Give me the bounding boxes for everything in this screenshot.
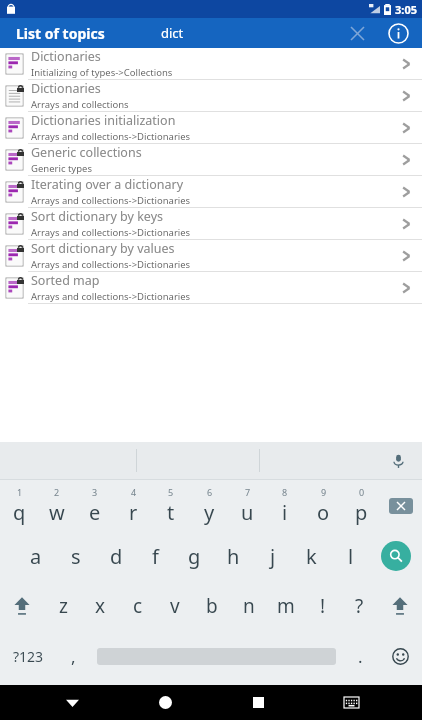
button[interactable]: Iterating over a dictionary (0, 176, 422, 208)
staticText: k (306, 543, 317, 570)
button[interactable]: Backspace (380, 480, 422, 531)
button[interactable]: Generic collections (0, 144, 422, 176)
staticText: t (167, 499, 175, 526)
staticText: 0 (359, 486, 365, 498)
staticText: , (71, 645, 76, 668)
staticText: 3:05 (395, 2, 417, 17)
button[interactable]: Shift (378, 581, 422, 631)
button[interactable]: 0 (342, 480, 380, 531)
button[interactable]: Dictionaries (0, 48, 422, 80)
button[interactable]: 4 (114, 480, 152, 531)
button[interactable]: s (56, 531, 96, 581)
button[interactable]: x (82, 581, 119, 631)
button[interactable]: Search (370, 531, 422, 581)
button[interactable]: Sort dictionary by values (0, 240, 422, 272)
button[interactable]: l (331, 531, 370, 581)
button[interactable]: a (16, 531, 56, 581)
staticText: dict (161, 24, 184, 42)
button[interactable]: 9 (304, 480, 342, 531)
staticText: 9 (321, 486, 327, 498)
staticText: 2 (54, 486, 60, 498)
button[interactable]: d (96, 531, 136, 581)
staticText: ?123 (13, 647, 44, 666)
staticText: x (95, 593, 106, 619)
staticText: . (358, 645, 363, 668)
staticText: w (49, 499, 65, 526)
button[interactable]: , (56, 631, 90, 681)
button[interactable]: ! (304, 581, 341, 631)
staticText: g (188, 543, 201, 570)
button[interactable]: 5 (152, 480, 190, 531)
button[interactable]: m (267, 581, 304, 631)
button[interactable]: Dictionaries (0, 80, 422, 112)
staticText: ? (355, 593, 364, 619)
staticText: Generic collections (31, 144, 142, 161)
button[interactable]: Home (143, 685, 187, 720)
button[interactable]: Sort dictionary by keys (0, 208, 422, 240)
staticText: n (243, 593, 255, 619)
staticText: 4 (131, 486, 137, 498)
button[interactable]: Back (50, 685, 94, 720)
button[interactable]: Info (384, 19, 412, 47)
staticText: Arrays and collections->Dictionaries (31, 226, 191, 239)
staticText: 7 (245, 486, 251, 498)
button[interactable]: g (175, 531, 214, 581)
staticText: Arrays and collections->Dictionaries (31, 194, 191, 207)
staticText: ! (320, 593, 326, 619)
staticText: e (89, 499, 101, 526)
button[interactable]: 2 (38, 480, 76, 531)
button[interactable]: z (44, 581, 82, 631)
staticText: Dictionaries (31, 48, 101, 65)
staticText: u (241, 499, 254, 526)
button[interactable]: b (193, 581, 230, 631)
staticText: v (170, 593, 180, 619)
button[interactable]: ? (341, 581, 378, 631)
button[interactable]: ?123 (0, 631, 56, 681)
staticText: z (59, 593, 68, 619)
staticText: f (152, 543, 159, 570)
button[interactable]: Clear search (344, 20, 370, 46)
button[interactable]: . (342, 631, 378, 681)
staticText: 5 (168, 486, 174, 498)
button[interactable]: Space (90, 631, 342, 681)
staticText: 8 (282, 486, 288, 498)
button[interactable]: n (230, 581, 267, 631)
button[interactable]: 3 (76, 480, 114, 531)
button[interactable]: h (214, 531, 253, 581)
button[interactable]: Recents (236, 685, 280, 720)
button[interactable]: f (136, 531, 175, 581)
button[interactable]: 7 (228, 480, 266, 531)
button[interactable]: Dictionaries initialization (0, 112, 422, 144)
button[interactable]: c (119, 581, 156, 631)
staticText: 6 (207, 486, 213, 498)
button[interactable]: Switch keyboard (329, 685, 373, 720)
staticText: h (227, 543, 240, 570)
staticText: m (277, 593, 295, 619)
staticText: j (270, 543, 276, 570)
button[interactable]: 8 (266, 480, 304, 531)
button[interactable]: j (253, 531, 292, 581)
button[interactable]: Voice input (384, 447, 412, 475)
button[interactable]: 1 (0, 480, 38, 531)
staticText: o (317, 499, 330, 526)
staticText: Arrays and collections->Dictionaries (31, 290, 191, 303)
button[interactable]: Sorted map (0, 272, 422, 304)
staticText: s (71, 543, 81, 570)
staticText: c (133, 593, 143, 619)
staticText: a (30, 543, 42, 570)
button[interactable]: Emoji (378, 631, 422, 681)
staticText: Sort dictionary by keys (31, 208, 163, 225)
staticText: d (110, 543, 123, 570)
staticText: r (129, 499, 138, 526)
staticText: 1 (17, 486, 23, 498)
button[interactable]: k (292, 531, 331, 581)
staticText: Dictionaries initialization (31, 112, 176, 129)
staticText: Generic types (31, 162, 92, 175)
staticText: p (355, 499, 368, 526)
staticText: y (204, 499, 215, 526)
staticText: Dictionaries (31, 80, 101, 97)
button[interactable]: v (156, 581, 193, 631)
staticText: q (13, 499, 26, 526)
button[interactable]: 6 (190, 480, 228, 531)
button[interactable]: Shift (0, 581, 44, 631)
